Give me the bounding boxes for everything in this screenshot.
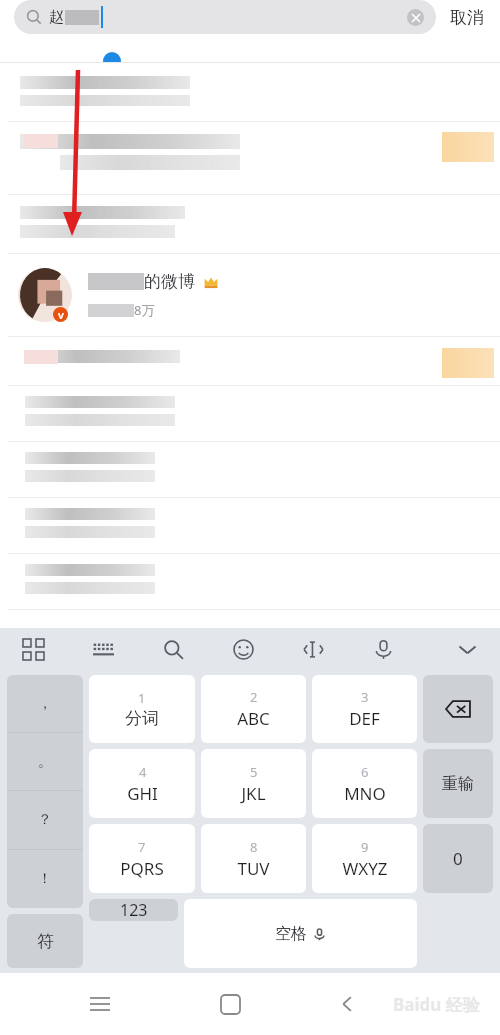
staticText: 3 [361, 688, 369, 706]
staticText: WXYZ [342, 857, 388, 880]
staticText: 9 [361, 838, 369, 856]
staticText: TUV [237, 857, 270, 880]
button[interactable] [0, 63, 500, 121]
button[interactable]: ， [7, 675, 83, 732]
staticText: GHI [127, 782, 158, 805]
button[interactable]: 3 [312, 675, 417, 743]
staticText: MNO [344, 782, 386, 805]
button[interactable]: 赵 [14, 0, 436, 34]
staticText: 5 [250, 763, 258, 781]
staticText: JKL [241, 782, 266, 805]
staticText: ！ [38, 870, 52, 888]
staticText: 。 [38, 753, 52, 771]
staticText: Baidu 经验 [393, 993, 480, 1016]
button[interactable] [0, 498, 500, 553]
button[interactable]: 5 [201, 749, 306, 818]
button[interactable]: 123 [89, 899, 178, 921]
button[interactable]: ！ [7, 850, 83, 908]
button[interactable]: 2 [201, 675, 306, 743]
button[interactable]: 6 [312, 749, 417, 818]
staticText: 的微博 [144, 271, 195, 292]
button[interactable]: Keyboard [88, 634, 118, 664]
staticText: 8万 [134, 301, 155, 319]
staticText: 8 [250, 838, 258, 856]
button[interactable] [0, 337, 500, 385]
staticText: 0 [453, 847, 463, 870]
button[interactable]: 0 [423, 824, 493, 893]
button[interactable] [0, 442, 500, 497]
staticText: 分词 [125, 708, 159, 729]
staticText: 2 [250, 688, 258, 706]
staticText: 重输 [442, 774, 474, 794]
staticText: DEF [349, 707, 380, 730]
staticText: 7 [138, 838, 146, 856]
button[interactable]: 取消 [448, 1, 486, 34]
button[interactable] [0, 554, 500, 609]
button[interactable]: 重输 [423, 749, 493, 818]
staticText: V [58, 309, 64, 321]
button[interactable]: Hide keyboard [452, 634, 482, 664]
button[interactable]: Backspace [423, 675, 493, 743]
button[interactable]: Voice [368, 634, 398, 664]
staticText: 空格 [275, 924, 307, 944]
staticText: 6 [361, 763, 369, 781]
staticText: PQRS [120, 857, 164, 880]
button[interactable]: Clear [407, 9, 424, 26]
button[interactable]: ？ [7, 791, 83, 849]
staticText: 符 [37, 931, 54, 952]
button[interactable] [0, 386, 500, 441]
staticText: 赵 [49, 8, 64, 27]
button[interactable]: 符 [7, 914, 83, 968]
staticText: 取消 [450, 7, 484, 28]
staticText: ， [38, 695, 52, 713]
button[interactable]: Recents [78, 982, 122, 1026]
button[interactable]: 空格 [184, 899, 417, 968]
button[interactable]: Apps [18, 634, 48, 664]
button[interactable]: Back [326, 982, 370, 1026]
button[interactable]: Search [158, 634, 188, 664]
button[interactable]: 8 [201, 824, 306, 893]
button[interactable]: Home [208, 982, 252, 1026]
button[interactable]: 4 [89, 749, 195, 818]
button[interactable]: 7 [89, 824, 195, 893]
staticText: ABC [237, 707, 270, 730]
staticText: ？ [38, 811, 52, 829]
button[interactable] [0, 122, 500, 194]
button[interactable]: 9 [312, 824, 417, 893]
button[interactable]: Cursor [298, 634, 328, 664]
button[interactable]: 1 [89, 675, 195, 743]
staticText: 4 [139, 763, 147, 781]
button[interactable]: Emoji [228, 634, 258, 664]
staticText: 123 [120, 899, 148, 921]
staticText: 1 [138, 689, 146, 707]
button[interactable] [0, 195, 500, 253]
button[interactable]: V [0, 254, 500, 336]
